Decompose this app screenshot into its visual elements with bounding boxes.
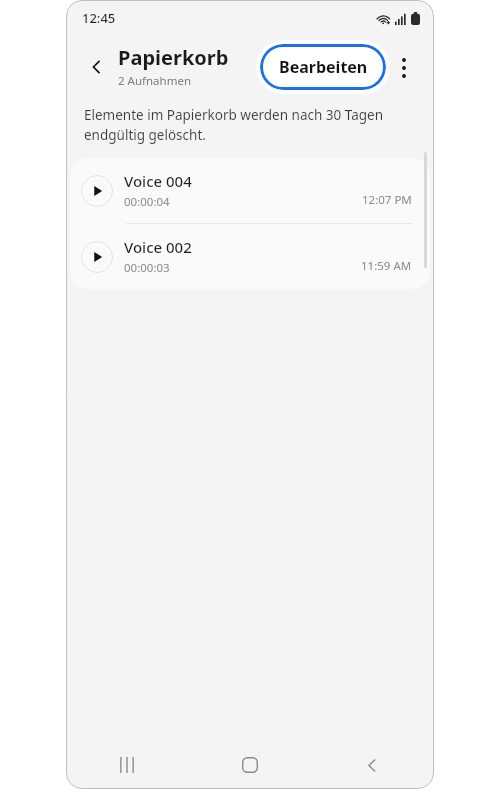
button[interactable]: Voice 002 xyxy=(70,224,430,289)
button[interactable]: Startbildschirm xyxy=(188,741,311,789)
staticText: Papierkorb xyxy=(118,44,229,71)
button[interactable]: Zurück xyxy=(311,741,434,789)
staticText: 12:07 PM xyxy=(362,192,412,208)
staticText: Elemente im Papierkorb werden nach 30 Ta… xyxy=(84,106,408,144)
staticText: 2 Aufnahmen xyxy=(118,73,191,89)
staticText: 00:00:04 xyxy=(124,194,170,210)
staticText: 00:00:03 xyxy=(124,260,170,276)
staticText: Voice 004 xyxy=(124,171,192,191)
staticText: 11:59 AM xyxy=(361,258,412,274)
button[interactable]: Zurück xyxy=(80,50,114,84)
button[interactable]: Bearbeiten xyxy=(256,40,390,94)
staticText: Bearbeiten xyxy=(279,56,368,78)
button[interactable]: Weitere Optionen xyxy=(388,52,420,84)
button[interactable]: Letzte Apps xyxy=(66,741,188,789)
staticText: 12:45 xyxy=(82,9,116,27)
staticText: Voice 002 xyxy=(124,237,192,257)
button[interactable]: Voice 004 xyxy=(70,158,430,223)
